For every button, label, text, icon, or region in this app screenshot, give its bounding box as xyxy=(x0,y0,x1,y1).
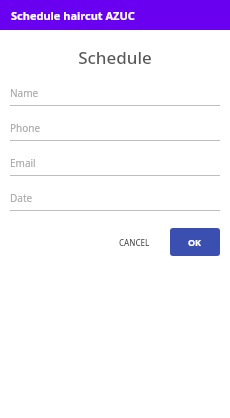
button[interactable]: Name xyxy=(10,86,220,106)
button[interactable]: CANCEL xyxy=(109,229,160,256)
staticText: Phone xyxy=(10,121,41,135)
staticText: Schedule haircut AZUC xyxy=(11,8,135,23)
staticText: Date xyxy=(10,191,33,205)
staticText: Schedule xyxy=(0,46,230,69)
staticText: OK xyxy=(188,236,202,248)
button[interactable]: Date xyxy=(10,191,220,211)
button[interactable]: Email xyxy=(10,156,220,176)
staticText: Name xyxy=(10,86,39,100)
button[interactable]: Schedule haircut AZUC xyxy=(0,0,230,30)
button[interactable]: OK xyxy=(170,228,220,256)
staticText: Email xyxy=(10,156,36,170)
button[interactable]: Phone xyxy=(10,121,220,141)
staticText: CANCEL xyxy=(119,237,150,248)
